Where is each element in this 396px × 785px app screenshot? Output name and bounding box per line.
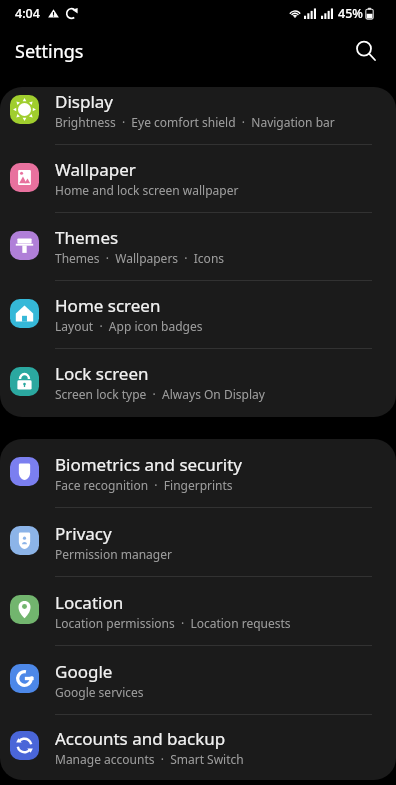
staticText: Permission manager [55,546,172,562]
staticText: Screen lock type · Always On Display [55,386,265,402]
staticText: Privacy [55,522,112,545]
staticText: Themes · Wallpapers · Icons [55,250,225,266]
staticText: Themes [55,226,119,249]
button[interactable]: Google [0,646,396,715]
staticText: Location [55,591,124,614]
staticText: Accounts and backup [55,727,226,750]
staticText: Lock screen [55,362,149,385]
staticText: Brightness · Eye comfort shield · Naviga… [55,114,335,130]
staticText: Settings [15,39,84,64]
staticText: 4:04 [15,5,40,22]
staticText: Manage accounts · Smart Switch [55,751,244,767]
staticText: Google [55,660,113,683]
button[interactable]: Biometrics and security [0,439,396,508]
button[interactable]: Privacy [0,508,396,577]
staticText: 45% [338,5,363,22]
button[interactable]: Accounts and backup [0,715,396,780]
button[interactable]: Location [0,577,396,646]
staticText: Home and lock screen wallpaper [55,182,239,198]
button[interactable]: Home screen [0,281,396,349]
staticText: Display [55,90,113,113]
button[interactable]: Lock screen [0,349,396,417]
staticText: Biometrics and security [55,453,242,476]
button[interactable]: Search [345,30,387,72]
staticText: Wallpaper [55,158,136,181]
staticText: Home screen [55,294,161,317]
button[interactable]: Wallpaper [0,145,396,213]
staticText: Layout · App icon badges [55,318,203,334]
staticText: Google services [55,684,144,700]
staticText: Location permissions · Location requests [55,615,291,631]
staticText: Face recognition · Fingerprints [55,477,233,493]
button[interactable]: Themes [0,213,396,281]
button[interactable]: Display [0,87,396,145]
